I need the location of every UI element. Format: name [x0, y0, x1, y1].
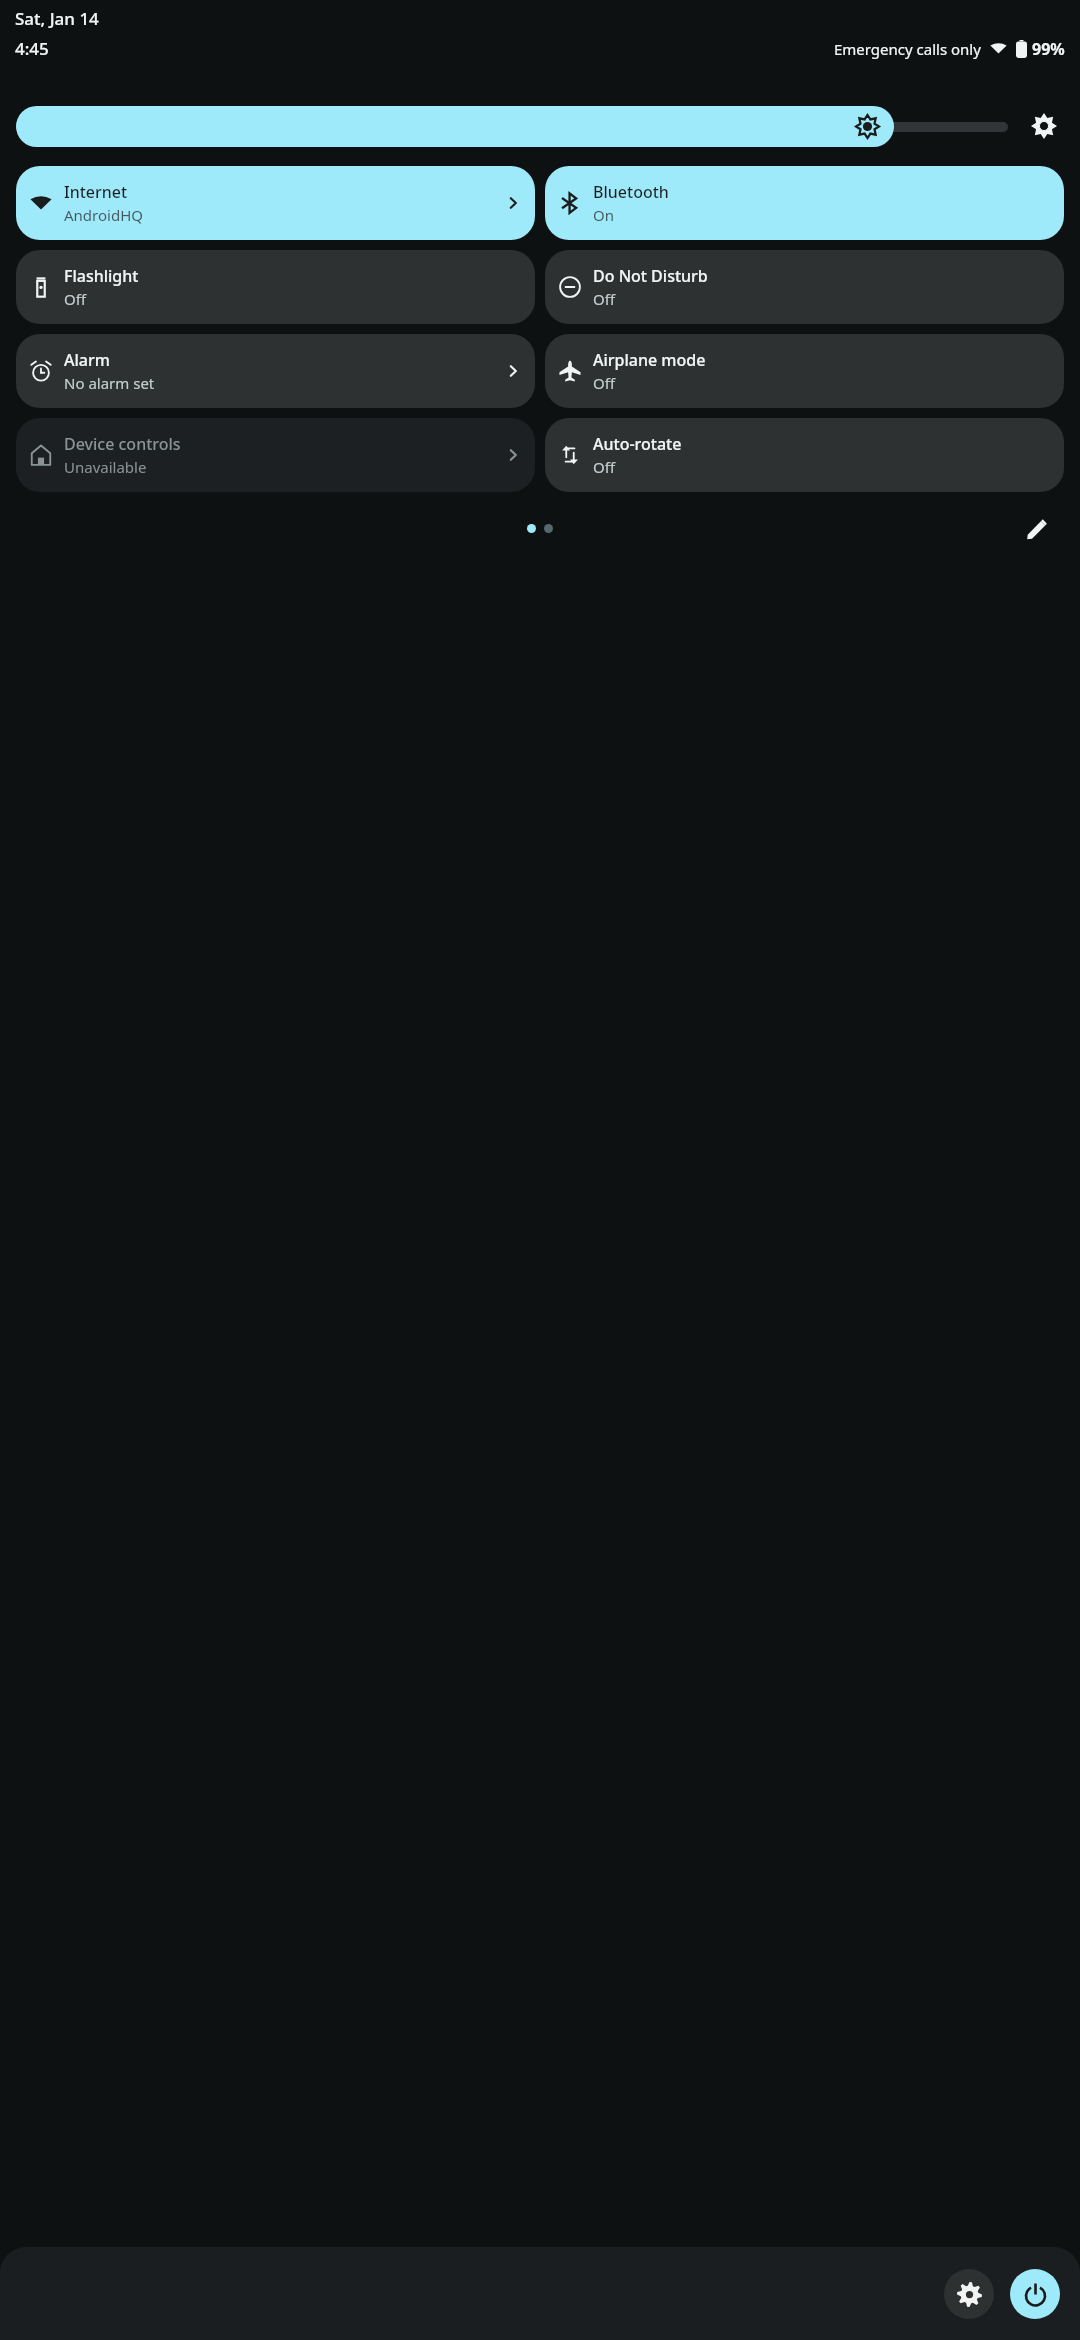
staticText: Flashlight [64, 265, 139, 287]
staticText: Off [593, 289, 616, 309]
button[interactable]: Internet [16, 166, 535, 240]
staticText: Unavailable [64, 457, 147, 477]
staticText: Sat, Jan 14 [15, 7, 99, 30]
staticText: No alarm set [64, 373, 155, 393]
staticText: Bluetooth [593, 181, 669, 203]
staticText: Off [64, 289, 87, 309]
staticText: Emergency calls only [834, 39, 981, 59]
staticText: Off [593, 457, 616, 477]
staticText: Do Not Disturb [593, 265, 708, 287]
staticText: On [593, 205, 614, 225]
staticText: AndroidHQ [64, 205, 143, 225]
staticText: Auto-rotate [593, 433, 682, 455]
staticText: 99% [1032, 38, 1065, 60]
staticText: Internet [64, 181, 128, 203]
button[interactable]: Auto brightness [1022, 104, 1066, 148]
staticText: Off [593, 373, 616, 393]
button[interactable]: Do Not Disturb [545, 250, 1064, 324]
button[interactable]: Settings [944, 2269, 994, 2319]
button[interactable]: Airplane mode [545, 334, 1064, 408]
staticText: Airplane mode [593, 349, 706, 371]
staticText: Device controls [64, 433, 181, 455]
button[interactable]: Flashlight [16, 250, 535, 324]
staticText: Alarm [64, 349, 110, 371]
button[interactable]: Bluetooth [545, 166, 1064, 240]
button[interactable]: Edit tiles [1018, 508, 1058, 548]
button[interactable]: Alarm [16, 334, 535, 408]
button[interactable]: Auto-rotate [545, 418, 1064, 492]
button[interactable]: Device controls [16, 418, 535, 492]
button[interactable]: Brightness [16, 106, 894, 147]
button[interactable]: Power [1010, 2269, 1060, 2319]
staticText: 4:45 [15, 37, 49, 60]
